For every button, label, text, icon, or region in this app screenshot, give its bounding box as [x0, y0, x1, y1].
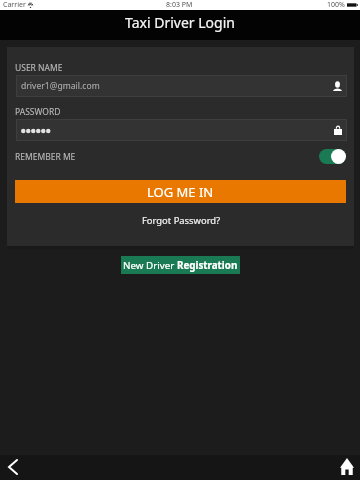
button[interactable]: Forgot Password? — [142, 214, 221, 227]
staticText: Taxi Driver Login — [125, 13, 235, 32]
staticText: driver1@gmail.com — [21, 80, 100, 92]
staticText: USER NAME — [15, 62, 63, 74]
button[interactable]: Home — [334, 455, 360, 480]
staticText: 100% — [327, 0, 345, 10]
staticText: Registration — [177, 259, 238, 272]
staticText: 8:03 PM — [166, 0, 193, 10]
staticText: Carrier — [3, 0, 26, 10]
staticText: New Driver — [123, 259, 177, 272]
staticText: LOG ME IN — [147, 183, 214, 201]
button[interactable]: LOG ME IN — [15, 180, 346, 203]
staticText: REMEMBER ME — [15, 151, 76, 163]
staticText: PASSWORD — [15, 106, 61, 118]
button[interactable]: Back — [0, 455, 26, 480]
button[interactable]: Remember me toggle — [319, 149, 346, 164]
button[interactable]: New Driver — [121, 256, 240, 274]
button[interactable] — [16, 119, 347, 141]
button[interactable]: driver1@gmail.com — [16, 75, 347, 97]
